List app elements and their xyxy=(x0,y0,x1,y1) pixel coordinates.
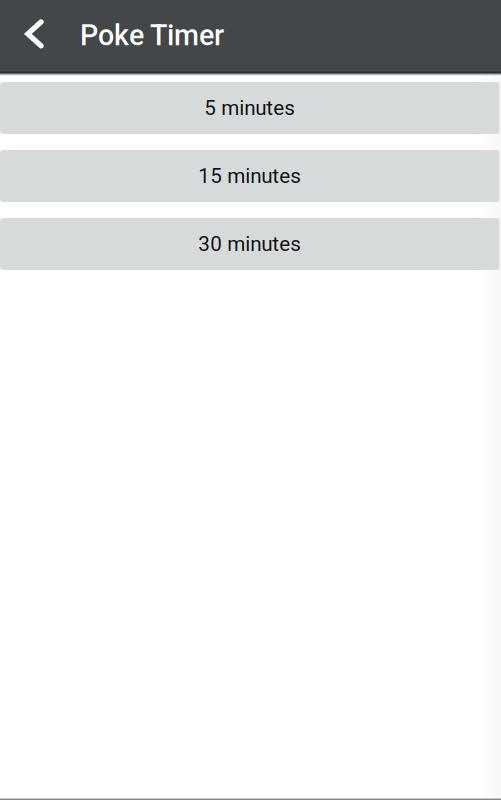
button[interactable]: Back xyxy=(0,0,67,71)
button[interactable]: 5 minutes xyxy=(0,82,499,134)
button[interactable]: 15 minutes xyxy=(0,150,499,202)
staticText: 5 minutes xyxy=(204,96,295,120)
staticText: 15 minutes xyxy=(198,164,301,188)
staticText: Poke Timer xyxy=(80,19,224,52)
button[interactable]: 30 minutes xyxy=(0,218,499,270)
staticText: 30 minutes xyxy=(198,232,301,256)
